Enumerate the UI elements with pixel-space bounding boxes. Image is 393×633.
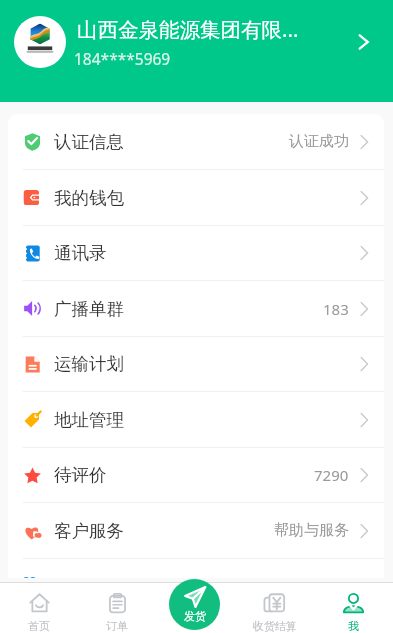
button[interactable]: 我 <box>314 582 393 633</box>
button[interactable]: 山西金泉能源集团有限... <box>0 0 393 83</box>
staticText: 184****5969 <box>74 48 171 69</box>
staticText: 山西金泉能源集团有限... <box>77 15 299 43</box>
staticText: 认证信息 <box>54 131 124 153</box>
button[interactable]: 通讯录 <box>8 225 384 280</box>
staticText: 订单 <box>106 619 128 633</box>
staticText: 地址管理 <box>54 409 124 431</box>
button[interactable]: 订单 <box>78 582 156 633</box>
staticText: 广播单群 <box>54 298 124 320</box>
staticText: 认证成功 <box>289 132 349 151</box>
button[interactable]: 发货 <box>169 579 220 630</box>
staticText: 待评价 <box>54 464 107 486</box>
button[interactable]: 首页 <box>0 582 78 633</box>
button[interactable]: 待评价 <box>8 447 384 502</box>
button[interactable]: 地址管理 <box>8 391 384 447</box>
staticText: 帮助与服务 <box>274 521 349 540</box>
button[interactable]: 我的钱包 <box>8 169 384 225</box>
button[interactable]: 广播单群 <box>8 280 384 336</box>
staticText: 我 <box>348 619 359 633</box>
staticText: 7290 <box>314 465 349 485</box>
button[interactable]: 运输计划 <box>8 336 384 391</box>
staticText: 收货结算 <box>253 619 297 633</box>
staticText: 客户服务 <box>54 520 124 542</box>
button[interactable]: 收货结算 <box>235 582 314 633</box>
staticText: 发货 <box>184 609 206 623</box>
button[interactable]: 认证信息 <box>8 114 384 169</box>
button[interactable] <box>8 558 384 578</box>
staticText: 我的钱包 <box>54 187 124 209</box>
staticText: 首页 <box>28 619 50 633</box>
staticText: 183 <box>323 299 349 319</box>
staticText: 通讯录 <box>54 242 107 264</box>
staticText: 运输计划 <box>54 353 124 375</box>
button[interactable]: 客户服务 <box>8 502 384 558</box>
